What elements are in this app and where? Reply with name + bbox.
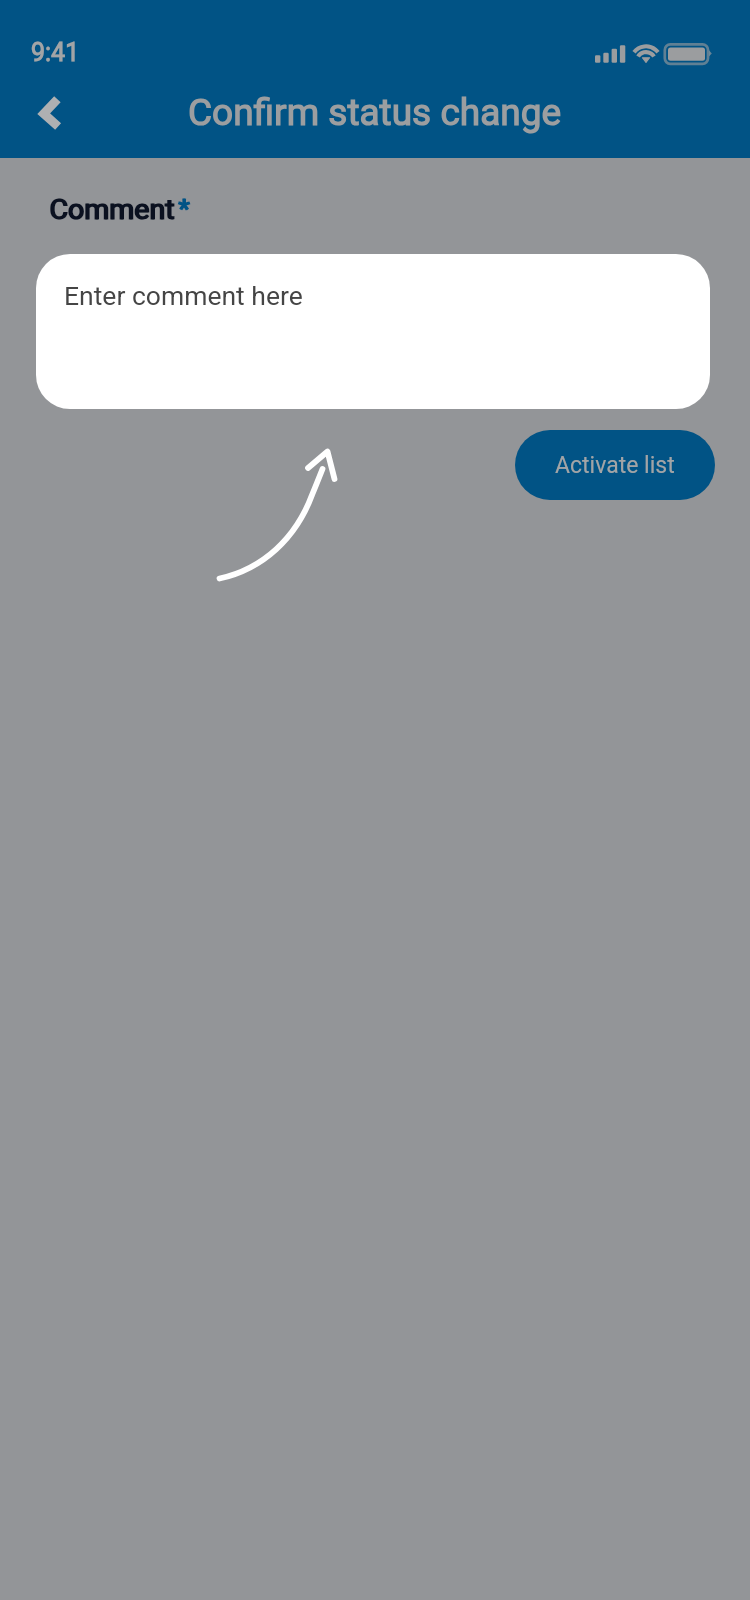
- staticText: Comment: [49, 193, 174, 226]
- staticText: Confirm status change: [188, 91, 562, 134]
- staticText: Activate list: [555, 452, 675, 479]
- staticText: Comment: [50, 193, 175, 226]
- button[interactable]: Back: [12, 78, 84, 150]
- staticText: *: [178, 194, 190, 224]
- button[interactable]: Activate list: [515, 430, 715, 500]
- staticText: Enter comment here: [64, 280, 303, 311]
- button[interactable]: Enter comment here: [36, 254, 710, 409]
- staticText: 9:41: [31, 38, 80, 67]
- staticText: *: [179, 194, 191, 224]
